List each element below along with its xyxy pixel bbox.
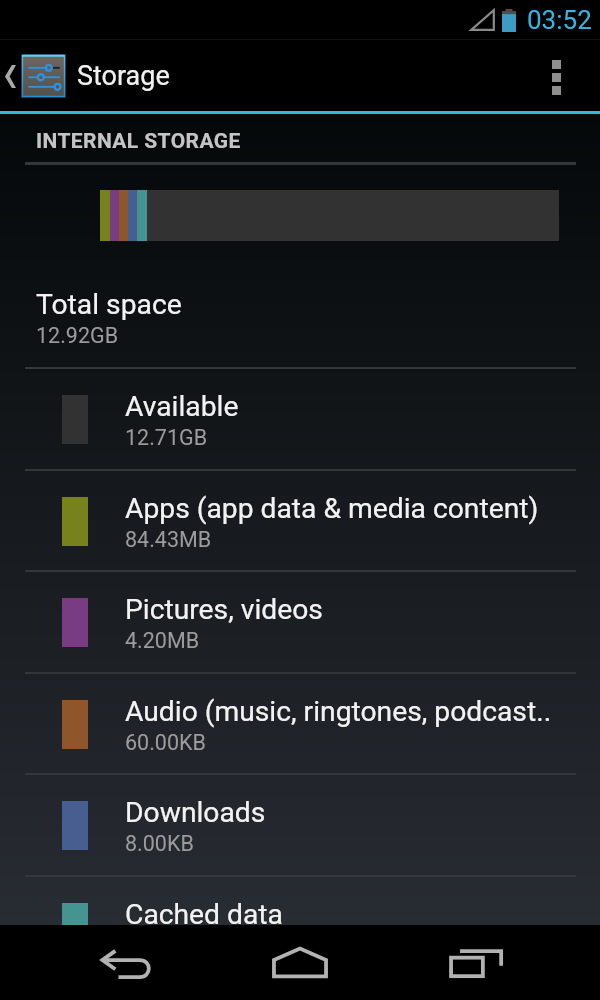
- staticText: Apps (app data & media content): [125, 492, 539, 525]
- button[interactable]: Downloads: [0, 773, 600, 875]
- button[interactable]: Audio (music, ringtones, podcast..: [0, 672, 600, 774]
- button[interactable]: Pictures, videos: [0, 570, 600, 672]
- button[interactable]: More options: [528, 40, 600, 111]
- staticText: 84.43MB: [125, 527, 212, 552]
- staticText: 12.92GB: [36, 323, 119, 348]
- staticText: Pictures, videos: [125, 593, 323, 626]
- staticText: Storage: [77, 60, 170, 92]
- staticText: Audio (music, ringtones, podcast..: [125, 695, 552, 728]
- staticText: 4.20MB: [125, 628, 200, 653]
- button[interactable]: Recent apps: [417, 925, 535, 1000]
- button[interactable]: Navigate up: [0, 54, 71, 98]
- button[interactable]: Total space: [0, 288, 600, 348]
- button[interactable]: Cached data: [0, 875, 600, 977]
- staticText: 8.00KB: [125, 831, 194, 856]
- button[interactable]: Back: [68, 925, 186, 1000]
- button[interactable]: Available: [0, 367, 600, 469]
- staticText: INTERNAL STORAGE: [36, 129, 241, 154]
- staticText: Available: [125, 390, 239, 423]
- staticText: Total space: [36, 288, 182, 321]
- staticText: 60.00KB: [125, 730, 206, 755]
- button[interactable]: Home: [241, 925, 359, 1000]
- staticText: Downloads: [125, 796, 266, 829]
- staticText: 03:52: [527, 5, 592, 35]
- staticText: Cached data: [125, 898, 283, 931]
- other: Navigate up: [5, 65, 16, 88]
- button[interactable]: Apps (app data & media content): [0, 469, 600, 571]
- staticText: 12.71GB: [125, 425, 208, 450]
